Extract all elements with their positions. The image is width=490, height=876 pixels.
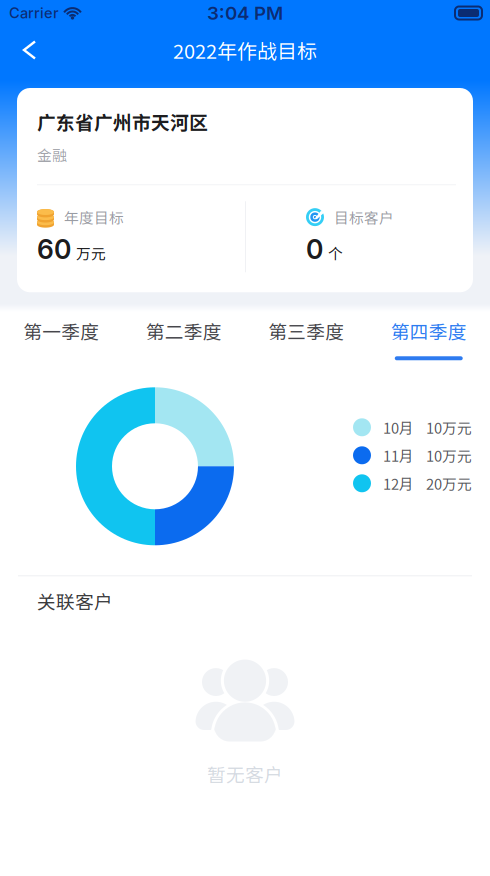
staticText: 金融 bbox=[37, 144, 67, 165]
staticText: 暂无客户 bbox=[207, 760, 283, 787]
staticText: 0 bbox=[306, 233, 323, 265]
staticText: 目标客户 bbox=[334, 206, 394, 228]
button[interactable]: 第三季度 bbox=[245, 313, 367, 364]
staticText: 12月 bbox=[383, 473, 414, 494]
staticText: 第三季度 bbox=[268, 317, 344, 344]
staticText: 10月 bbox=[383, 417, 414, 438]
button[interactable]: Back bbox=[0, 29, 53, 70]
staticText: 广东省广州市天河区 bbox=[37, 108, 208, 135]
staticText: 2022年作战目标 bbox=[173, 35, 317, 64]
button[interactable]: 第二季度 bbox=[122, 313, 245, 364]
button[interactable]: 第一季度 bbox=[0, 313, 122, 364]
staticText: 第一季度 bbox=[23, 317, 99, 344]
staticText: 第四季度 bbox=[391, 317, 467, 344]
staticText: 10万元 bbox=[426, 445, 472, 466]
staticText: 11月 bbox=[383, 445, 414, 466]
staticText: 20万元 bbox=[426, 473, 472, 494]
staticText: 关联客户 bbox=[37, 587, 113, 614]
staticText: 万元 bbox=[76, 242, 106, 263]
staticText: 个 bbox=[328, 242, 343, 263]
button[interactable]: 第四季度 bbox=[367, 313, 490, 364]
staticText: 年度目标 bbox=[64, 206, 124, 228]
staticText: 3:04 PM bbox=[207, 2, 283, 24]
staticText: 第二季度 bbox=[146, 317, 222, 344]
staticText: Carrier bbox=[9, 4, 59, 22]
staticText: 60 bbox=[37, 233, 71, 265]
staticText: 10万元 bbox=[426, 417, 472, 438]
